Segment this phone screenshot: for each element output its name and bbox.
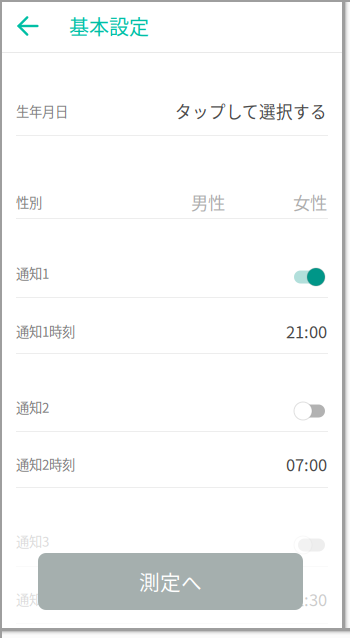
staticText: 男性 [191,189,225,215]
staticText: 性別 [16,192,42,212]
staticText: 通知1 [16,263,49,283]
staticText: 07:00 [286,452,327,476]
button[interactable]: 女性 [293,189,327,215]
staticText: 女性 [293,189,327,215]
button[interactable]: 通知1時刻 [0,298,350,354]
button[interactable]: 通知1 [294,260,327,286]
button[interactable]: 生年月日 [0,53,350,136]
button[interactable]: 通知2時刻 [0,432,350,488]
staticText: 測定へ [139,566,202,596]
button[interactable]: 通知2 [294,394,327,420]
staticText: 通知1時刻 [16,321,75,341]
staticText: 通知3時刻 [16,589,75,609]
button[interactable]: 測定へ [38,553,303,610]
button[interactable]: Back [4,0,52,52]
staticText: 21:00 [286,319,327,343]
staticText: 通知3 [16,531,49,551]
staticText: 通知2 [16,397,49,417]
staticText: 生年月日 [16,101,68,121]
button[interactable]: 男性 [191,189,225,215]
staticText: 通知2時刻 [16,454,75,474]
staticText: タップして選択する [175,99,327,123]
staticText: 基本設定 [69,11,149,40]
staticText: 12:30 [286,587,327,611]
